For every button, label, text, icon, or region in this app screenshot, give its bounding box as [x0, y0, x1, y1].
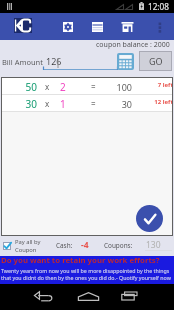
staticText: Bill Amount — [2, 57, 43, 67]
staticText: = — [91, 81, 96, 92]
staticText: 7 left — [142, 81, 173, 89]
staticText: 1 — [60, 97, 66, 111]
staticText: 100 — [106, 81, 132, 93]
button[interactable]: More options — [155, 20, 165, 34]
staticText: Cash: — [56, 241, 73, 250]
button[interactable]: Recent apps — [119, 288, 143, 304]
staticText: Pay all by Coupon — [15, 238, 41, 253]
staticText: = — [91, 98, 96, 109]
staticText: GO — [149, 55, 163, 67]
button[interactable]: Confirm — [136, 205, 163, 232]
staticText: coupon balance : 2000 — [96, 40, 170, 49]
staticText: 50 — [16, 80, 37, 94]
staticText: x — [45, 98, 50, 109]
staticText: Coupons: — [104, 241, 133, 250]
button[interactable]: Calculator — [117, 53, 134, 70]
staticText: 12 left — [142, 98, 173, 106]
button[interactable]: Back — [32, 288, 56, 304]
staticText: -4 — [81, 239, 89, 251]
button[interactable]: Home — [76, 288, 100, 304]
staticText: 30 — [16, 97, 37, 111]
staticText: 126 — [46, 55, 62, 67]
staticText: 12:08 — [148, 1, 169, 12]
button[interactable]: List view — [92, 22, 103, 32]
button[interactable]: Store — [121, 22, 134, 32]
staticText: Do you want to retain your work efforts? — [1, 255, 174, 266]
button[interactable]: App logo — [14, 18, 32, 33]
staticText: Twenty years from now you will be more d… — [1, 267, 174, 282]
button[interactable]: Do you want to retain your work efforts? — [0, 256, 174, 284]
button[interactable]: GO — [139, 51, 172, 71]
staticText: 30 — [106, 98, 132, 110]
staticText: 2 — [60, 80, 66, 94]
button[interactable]: Pay all by Coupon — [3, 238, 41, 253]
button[interactable]: Settings — [63, 22, 73, 32]
staticText: 130 — [146, 239, 161, 251]
staticText: x — [45, 81, 50, 92]
